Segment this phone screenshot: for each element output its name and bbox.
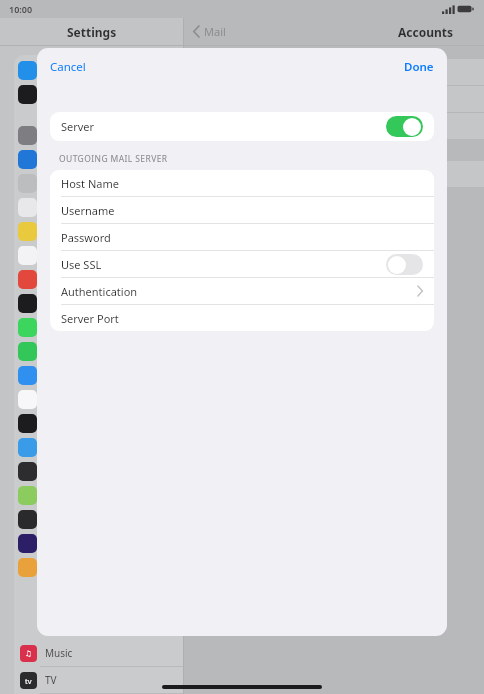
button[interactable]: App icon xyxy=(18,318,37,337)
button[interactable]: Authentication xyxy=(50,278,434,304)
button[interactable]: Done xyxy=(391,51,447,83)
staticText: TV xyxy=(45,673,57,687)
button[interactable]: App icon xyxy=(18,510,37,529)
staticText: Done xyxy=(404,59,434,75)
button[interactable]: Use SSL xyxy=(50,251,434,277)
button[interactable]: App icon xyxy=(18,174,37,193)
button[interactable]: App icon xyxy=(18,270,37,289)
button[interactable]: Server xyxy=(50,112,434,141)
staticText: Password xyxy=(61,230,111,245)
button[interactable]: Server Port xyxy=(50,305,434,331)
button[interactable]: Mail xyxy=(184,19,235,44)
button[interactable]: App icon xyxy=(18,558,37,577)
button[interactable]: App icon xyxy=(18,85,37,104)
button[interactable]: App icon xyxy=(18,486,37,505)
button[interactable]: ♫ xyxy=(14,640,183,666)
staticText: Use SSL xyxy=(61,257,102,272)
staticText: Username xyxy=(61,203,115,218)
button[interactable]: App icon xyxy=(18,366,37,385)
button[interactable]: Password xyxy=(50,224,434,250)
button[interactable] xyxy=(184,161,484,187)
button[interactable]: Switch on xyxy=(386,116,423,137)
button[interactable]: App icon xyxy=(18,126,37,145)
staticText: Server Port xyxy=(61,311,119,326)
button[interactable]: Username xyxy=(50,197,434,223)
button[interactable]: App icon xyxy=(18,438,37,457)
staticText: Cancel xyxy=(50,59,86,75)
button[interactable]: App icon xyxy=(18,198,37,217)
button[interactable]: App icon xyxy=(18,150,37,169)
button[interactable]: tv xyxy=(14,667,183,693)
staticText: 10:00 xyxy=(9,3,33,15)
staticText: Accounts xyxy=(398,24,454,40)
button[interactable]: App icon xyxy=(18,390,37,409)
staticText: Host Name xyxy=(61,176,119,191)
staticText: tv xyxy=(25,676,32,686)
button[interactable]: Host Name xyxy=(50,170,434,196)
button[interactable]: App icon xyxy=(18,534,37,553)
staticText: Mail xyxy=(204,24,226,39)
button[interactable]: App icon xyxy=(18,246,37,265)
button[interactable]: App icon xyxy=(18,294,37,313)
button[interactable]: App icon xyxy=(18,61,37,80)
staticText: Music xyxy=(45,646,73,660)
staticText: ♫ xyxy=(25,649,32,658)
button[interactable]: App icon xyxy=(18,462,37,481)
button[interactable] xyxy=(184,86,484,112)
staticText: Authentication xyxy=(61,284,138,299)
staticText: OUTGOING MAIL SERVER xyxy=(59,153,168,165)
staticText: Settings xyxy=(67,24,117,40)
staticText: Server xyxy=(61,119,95,134)
button[interactable] xyxy=(184,59,484,85)
button[interactable]: Cancel xyxy=(37,51,99,83)
button[interactable]: App icon xyxy=(18,342,37,361)
button[interactable]: App icon xyxy=(18,414,37,433)
button[interactable]: Switch off xyxy=(386,254,423,275)
button[interactable] xyxy=(184,113,484,139)
button[interactable]: App icon xyxy=(18,222,37,241)
